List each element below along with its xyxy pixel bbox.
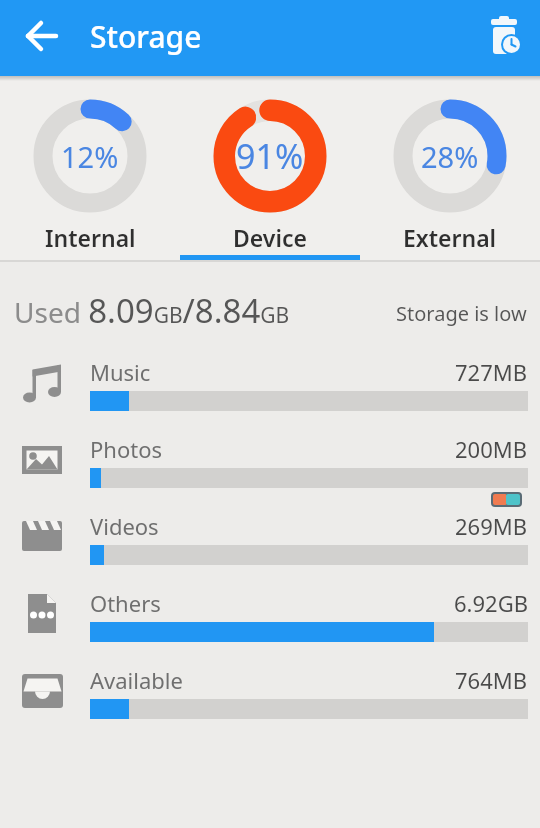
staticText: 12%: [61, 137, 119, 176]
staticText: 28%: [421, 137, 479, 176]
staticText: Videos: [90, 511, 159, 541]
staticText: Photos: [90, 434, 163, 464]
button[interactable]: Music: [0, 345, 540, 422]
button[interactable]: [482, 13, 526, 57]
button[interactable]: 12%: [0, 76, 180, 262]
staticText: 91%: [236, 133, 304, 179]
staticText: Music: [90, 357, 151, 387]
staticText: Available: [90, 665, 183, 695]
staticText: 727MB: [455, 357, 528, 387]
button[interactable]: 28%: [360, 76, 540, 262]
staticText: Used 8.09GB/8.84GB: [14, 288, 290, 333]
staticText: Internal: [45, 222, 136, 253]
staticText: Device: [233, 222, 307, 253]
button[interactable]: 91%: [180, 76, 360, 262]
button[interactable]: Others: [0, 576, 540, 653]
staticText: 6.92GB: [454, 588, 528, 618]
button[interactable]: Available: [0, 653, 540, 730]
staticText: External: [403, 222, 497, 253]
staticText: 269MB: [455, 511, 528, 541]
staticText: 764MB: [455, 665, 528, 695]
staticText: Storage: [90, 16, 202, 57]
button[interactable]: [19, 14, 63, 58]
staticText: Others: [90, 588, 161, 618]
button[interactable]: Photos: [0, 422, 540, 499]
staticText: 200MB: [455, 434, 528, 464]
staticText: Storage is low: [396, 300, 527, 327]
button[interactable]: Videos: [0, 499, 540, 576]
